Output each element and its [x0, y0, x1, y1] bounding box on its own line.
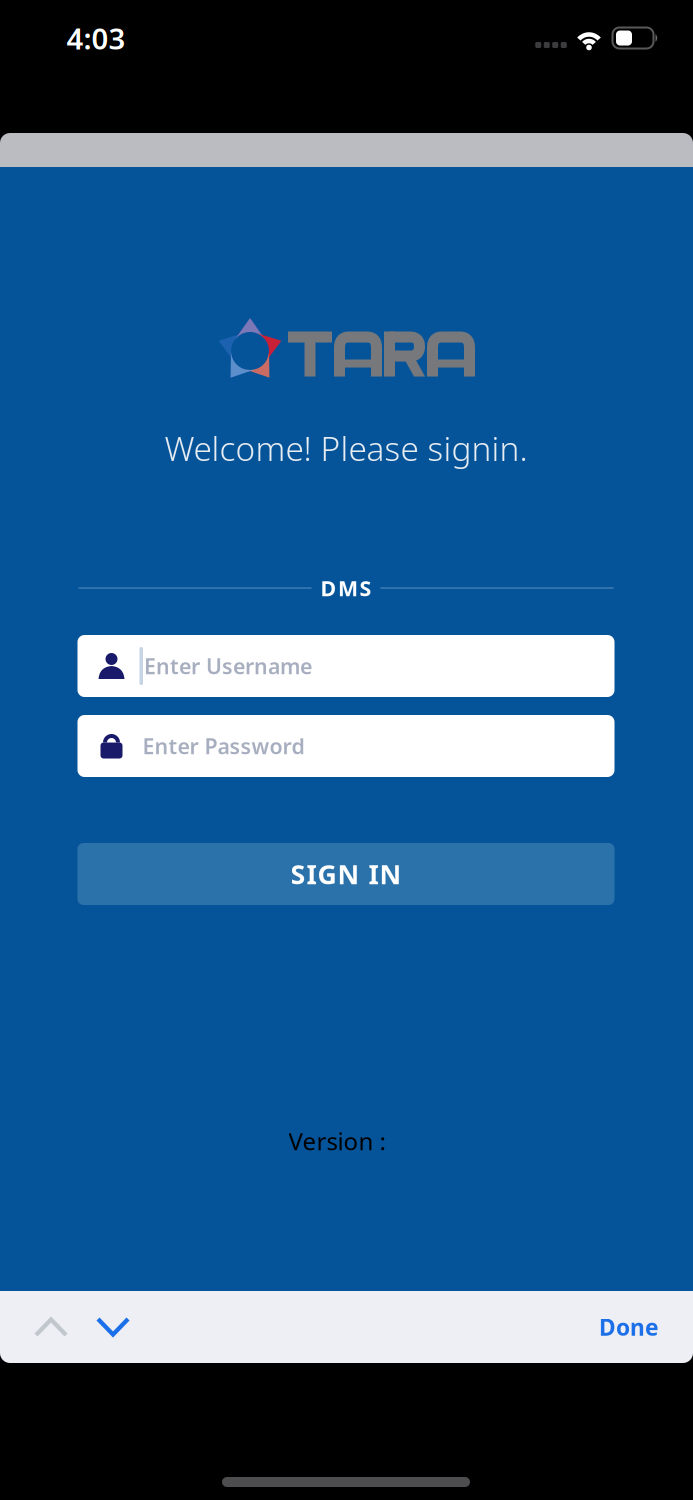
- button[interactable]: Enter Password: [77, 715, 614, 777]
- button[interactable]: Previous field: [34, 1316, 68, 1338]
- staticText: DMS: [320, 574, 371, 602]
- button[interactable]: Done: [599, 1312, 659, 1342]
- button[interactable]: Enter Username: [77, 635, 614, 697]
- staticText: Welcome! Please signin.: [164, 426, 527, 470]
- button[interactable]: Next field: [96, 1316, 130, 1338]
- staticText: Version :: [288, 1125, 391, 1157]
- staticText: Done: [599, 1312, 659, 1342]
- staticText: Enter Password: [142, 732, 304, 760]
- staticText: 4:03: [66, 18, 125, 57]
- staticText: SIGN IN: [290, 856, 401, 892]
- staticText: Enter Username: [144, 652, 312, 680]
- button[interactable]: SIGN IN: [77, 843, 614, 905]
